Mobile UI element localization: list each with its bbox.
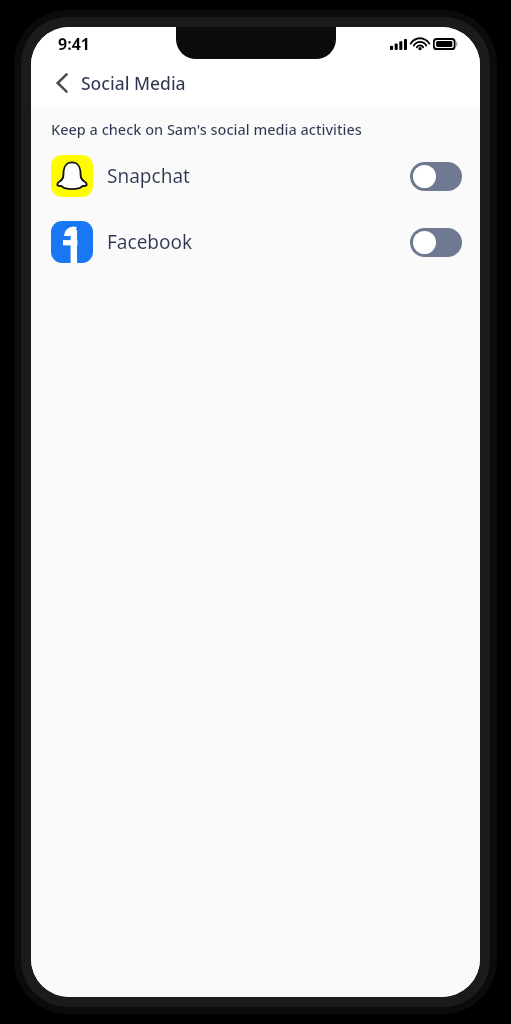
staticText: Snapchat [107, 163, 190, 189]
staticText: Facebook [107, 229, 193, 255]
staticText: Social Media [81, 71, 186, 95]
button[interactable]: Snapchat [31, 154, 480, 198]
button[interactable]: Facebook [31, 220, 480, 264]
button[interactable]: Toggle [410, 228, 462, 257]
staticText: Keep a check on Sam's social media activ… [51, 119, 362, 139]
button[interactable]: Back [45, 66, 79, 100]
staticText: 9:41 [58, 33, 90, 55]
button[interactable]: Toggle [410, 162, 462, 191]
